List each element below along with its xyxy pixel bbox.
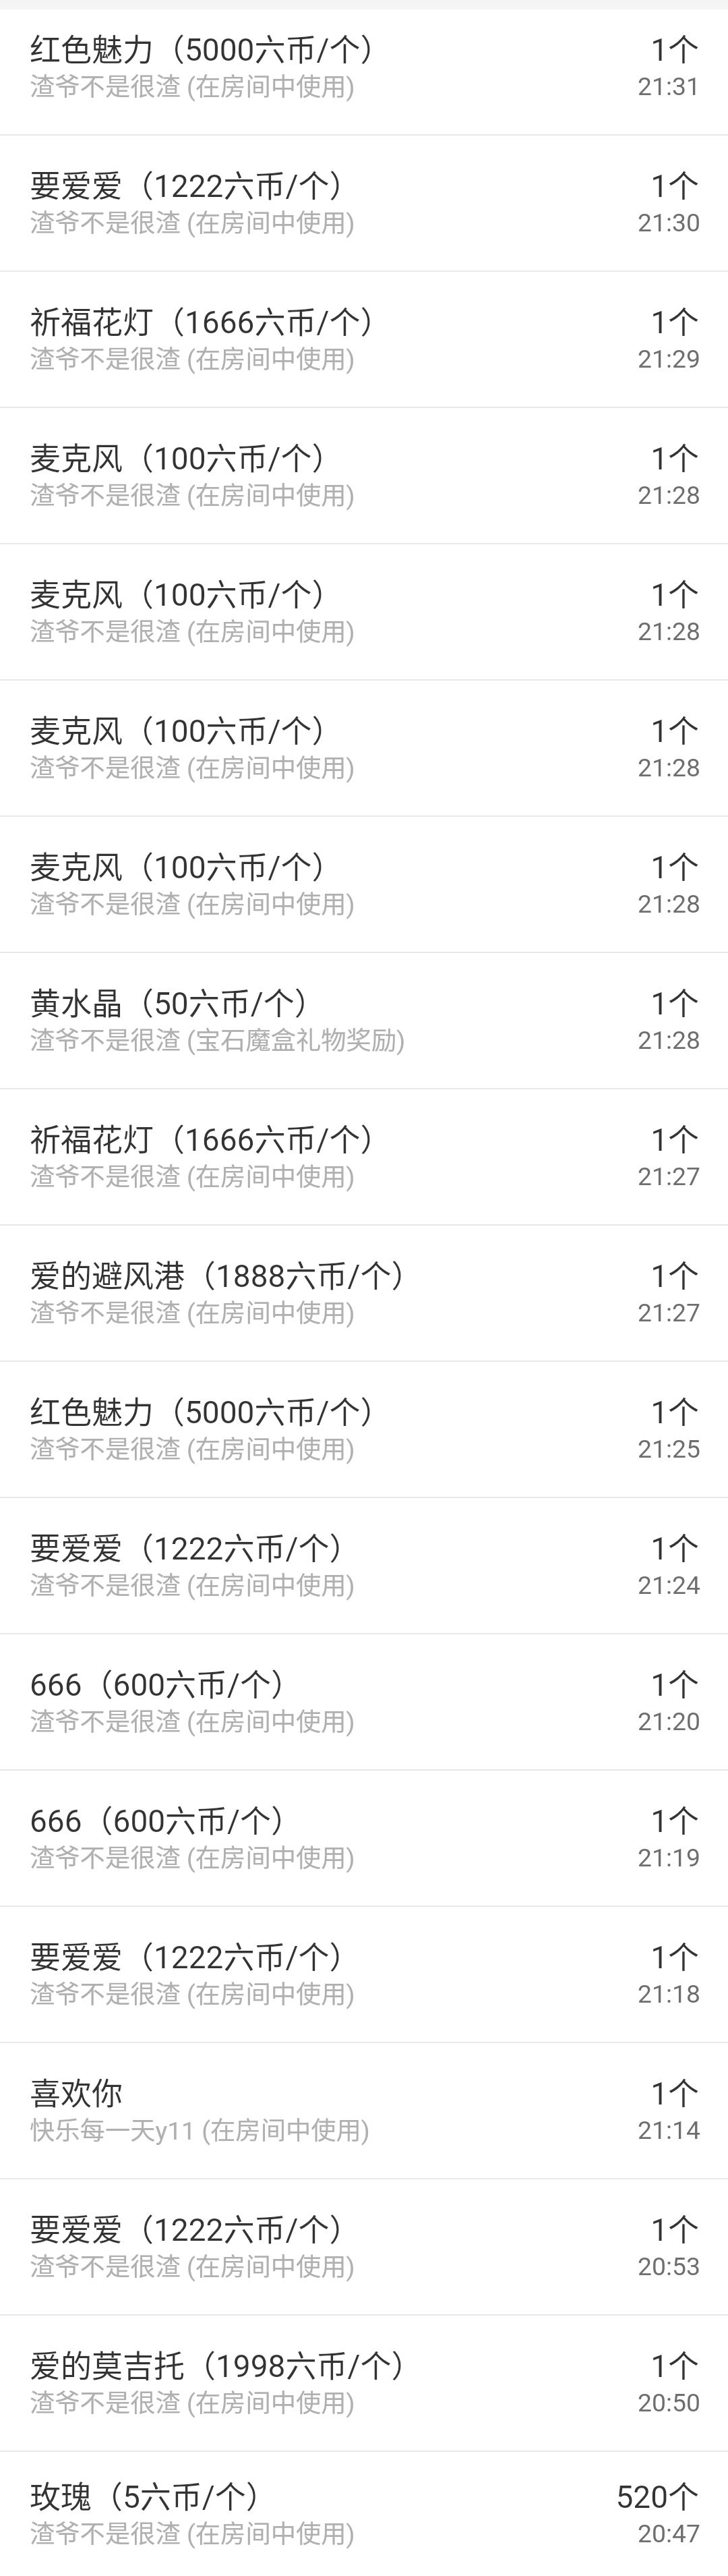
- staticText: 爱的莫吉托（1998六币/个）: [30, 2341, 423, 2386]
- staticText: 渣爷不是很渣 (在房间中使用): [30, 748, 355, 784]
- staticText: 21:24: [638, 1570, 700, 1600]
- staticText: 1个: [650, 1796, 699, 1841]
- staticText: 渣爷不是很渣 (在房间中使用): [30, 339, 355, 376]
- staticText: 1个: [650, 979, 699, 1024]
- staticText: 1个: [650, 1933, 699, 1978]
- staticText: 520个: [615, 2472, 699, 2517]
- staticText: 渣爷不是很渣 (在房间中使用): [30, 612, 355, 648]
- staticText: 麦克风（100六币/个）: [30, 570, 343, 615]
- staticText: 1个: [650, 2341, 699, 2386]
- button[interactable]: 麦克风（100六币/个）: [0, 817, 728, 952]
- staticText: 渣爷不是很渣 (在房间中使用): [30, 1566, 355, 1602]
- staticText: 渣爷不是很渣 (宝石魔盒礼物奖励): [30, 1021, 406, 1057]
- staticText: 麦克风（100六币/个）: [30, 842, 343, 888]
- staticText: 1个: [650, 1115, 699, 1160]
- staticText: 要爱爱（1222六币/个）: [30, 1933, 361, 1978]
- staticText: 1个: [650, 570, 699, 615]
- staticText: 21:28: [638, 889, 700, 919]
- staticText: 1个: [650, 2069, 699, 2114]
- staticText: 21:27: [638, 1298, 700, 1327]
- staticText: 渣爷不是很渣 (在房间中使用): [30, 476, 355, 512]
- staticText: 21:29: [638, 344, 700, 374]
- button[interactable]: 要爱爱（1222六币/个）: [0, 1907, 728, 2042]
- staticText: 要爱爱（1222六币/个）: [30, 1524, 361, 1569]
- staticText: 21:31: [638, 71, 700, 101]
- staticText: 快乐每一天y11 (在房间中使用): [30, 2111, 370, 2147]
- staticText: 渣爷不是很渣 (在房间中使用): [30, 1293, 355, 1329]
- staticText: 渣爷不是很渣 (在房间中使用): [30, 1157, 355, 1193]
- button[interactable]: 玫瑰（5六币/个）: [0, 2452, 728, 2576]
- button[interactable]: 红色魅力（5000六币/个）: [0, 0, 728, 134]
- staticText: 祈福花灯（1666六币/个）: [30, 297, 392, 343]
- staticText: 渣爷不是很渣 (在房间中使用): [30, 2247, 355, 2283]
- staticText: 1个: [650, 1251, 699, 1296]
- staticText: 喜欢你: [30, 2069, 123, 2114]
- button[interactable]: 要爱爱（1222六币/个）: [0, 1498, 728, 1633]
- button[interactable]: 麦克风（100六币/个）: [0, 544, 728, 679]
- staticText: 21:20: [638, 1707, 700, 1736]
- button[interactable]: 爱的避风港（1888六币/个）: [0, 1226, 728, 1361]
- staticText: 1个: [650, 297, 699, 343]
- staticText: 666（600六币/个）: [30, 1796, 303, 1841]
- staticText: 麦克风（100六币/个）: [30, 434, 343, 479]
- staticText: 21:27: [638, 1162, 700, 1191]
- staticText: 红色魅力（5000六币/个）: [30, 1387, 392, 1433]
- button[interactable]: 黄水晶（50六币/个）: [0, 953, 728, 1088]
- button[interactable]: 666（600六币/个）: [0, 1771, 728, 1906]
- staticText: 1个: [650, 842, 699, 888]
- staticText: 1个: [650, 434, 699, 479]
- staticText: 渣爷不是很渣 (在房间中使用): [30, 884, 355, 921]
- staticText: 渣爷不是很渣 (在房间中使用): [30, 67, 355, 103]
- button[interactable]: 红色魅力（5000六币/个）: [0, 1362, 728, 1497]
- staticText: 666（600六币/个）: [30, 1660, 303, 1705]
- staticText: 要爱爱（1222六币/个）: [30, 2205, 361, 2250]
- staticText: 渣爷不是很渣 (在房间中使用): [30, 1702, 355, 1738]
- staticText: 1个: [650, 2205, 699, 2250]
- staticText: 红色魅力（5000六币/个）: [30, 25, 392, 70]
- staticText: 21:28: [638, 1025, 700, 1055]
- staticText: 20:47: [638, 2519, 700, 2548]
- staticText: 21:25: [638, 1434, 700, 1464]
- staticText: 1个: [650, 161, 699, 206]
- staticText: 1个: [650, 1387, 699, 1433]
- staticText: 玫瑰（5六币/个）: [30, 2472, 277, 2517]
- staticText: 祈福花灯（1666六币/个）: [30, 1115, 392, 1160]
- staticText: 渣爷不是很渣 (在房间中使用): [30, 1974, 355, 2011]
- staticText: 1个: [650, 25, 699, 70]
- staticText: 要爱爱（1222六币/个）: [30, 161, 361, 206]
- button[interactable]: 麦克风（100六币/个）: [0, 681, 728, 815]
- button[interactable]: 666（600六币/个）: [0, 1634, 728, 1769]
- staticText: 渣爷不是很渣 (在房间中使用): [30, 2383, 355, 2420]
- staticText: 爱的避风港（1888六币/个）: [30, 1251, 423, 1296]
- staticText: 1个: [650, 1660, 699, 1705]
- button[interactable]: 祈福花灯（1666六币/个）: [0, 1089, 728, 1224]
- staticText: 渣爷不是很渣 (在房间中使用): [30, 203, 355, 239]
- button[interactable]: 祈福花灯（1666六币/个）: [0, 272, 728, 407]
- staticText: 1个: [650, 706, 699, 751]
- other: 礼物记录: [0, 0, 728, 2576]
- staticText: 渣爷不是很渣 (在房间中使用): [30, 1429, 355, 1466]
- staticText: 21:30: [638, 208, 700, 237]
- button[interactable]: 麦克风（100六币/个）: [0, 408, 728, 543]
- staticText: 1个: [650, 1524, 699, 1569]
- staticText: 麦克风（100六币/个）: [30, 706, 343, 751]
- button[interactable]: 要爱爱（1222六币/个）: [0, 136, 728, 270]
- staticText: 21:14: [638, 2115, 700, 2145]
- staticText: 渣爷不是很渣 (在房间中使用): [30, 1838, 355, 1874]
- button[interactable]: 喜欢你: [0, 2043, 728, 2178]
- staticText: 21:18: [638, 1979, 700, 2009]
- staticText: 21:28: [638, 617, 700, 646]
- staticText: 渣爷不是很渣 (在房间中使用): [30, 2514, 355, 2550]
- staticText: 21:19: [638, 1843, 700, 1872]
- staticText: 21:28: [638, 753, 700, 782]
- button[interactable]: 爱的莫吉托（1998六币/个）: [0, 2316, 728, 2451]
- staticText: 20:50: [638, 2388, 700, 2417]
- staticText: 20:53: [638, 2252, 700, 2281]
- button[interactable]: 要爱爱（1222六币/个）: [0, 2179, 728, 2314]
- staticText: 21:28: [638, 480, 700, 510]
- staticText: 黄水晶（50六币/个）: [30, 979, 326, 1024]
